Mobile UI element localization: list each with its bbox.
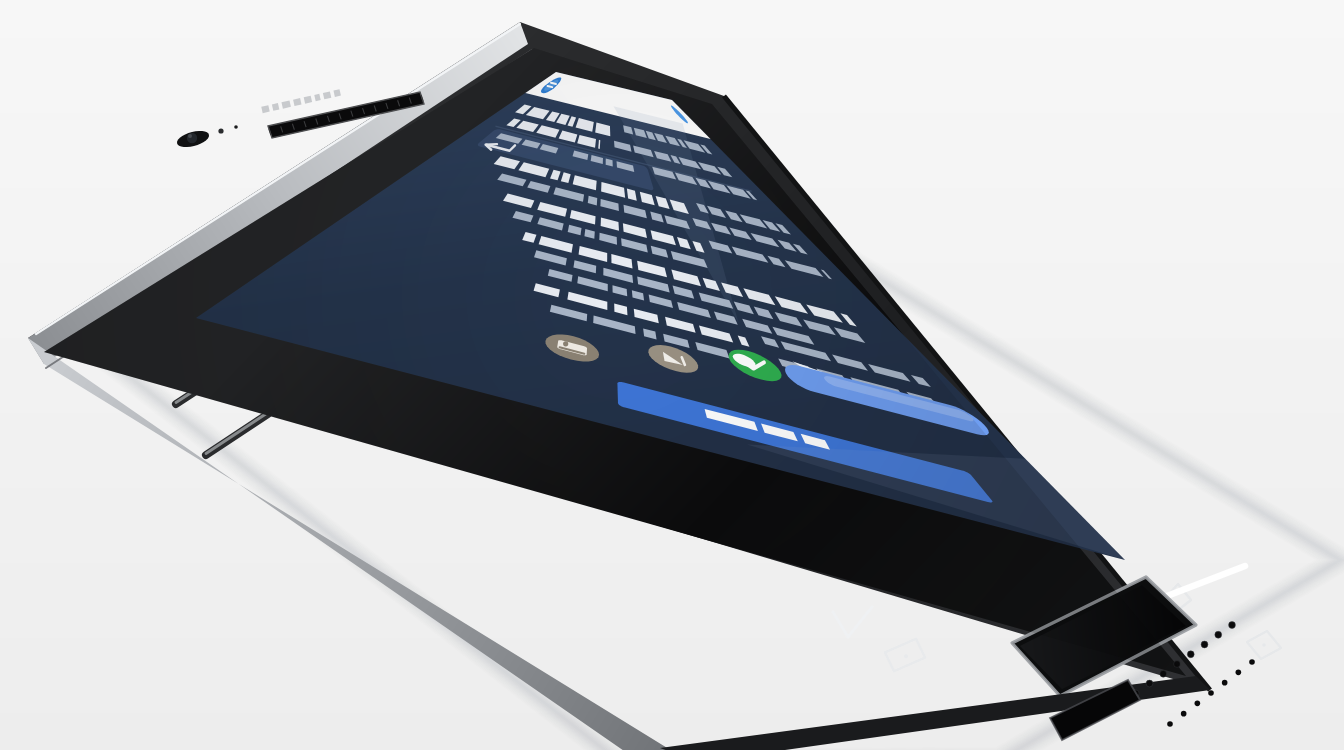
button[interactable]: Messaging app on phone bbox=[0, 0, 1344, 750]
other: Messaging app on phone bbox=[0, 0, 1344, 750]
